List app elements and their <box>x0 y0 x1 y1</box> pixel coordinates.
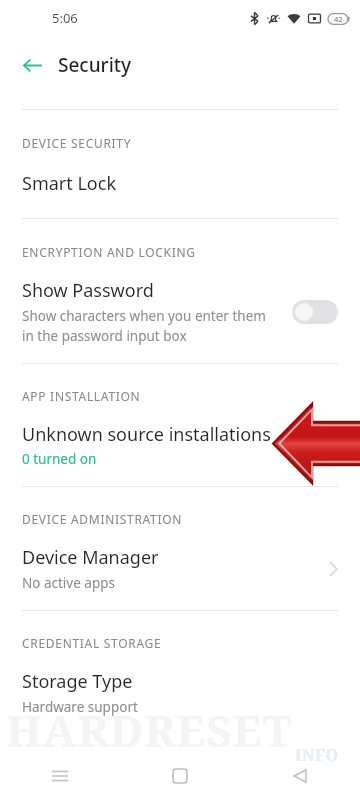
staticText: CREDENTIAL STORAGE <box>22 635 162 651</box>
button[interactable]: Show Password toggle <box>292 300 338 324</box>
staticText: 42 <box>334 14 343 24</box>
button[interactable]: Back <box>12 45 52 85</box>
staticText: 5:06 <box>52 9 78 27</box>
button[interactable]: Show Password <box>0 260 360 363</box>
staticText: Show characters when you enter them in t… <box>22 307 278 345</box>
staticText: Unknown source installations <box>22 422 271 447</box>
button[interactable]: Back <box>240 752 360 800</box>
staticText: Smart Lock <box>22 171 116 196</box>
staticText: Storage Type <box>22 669 133 694</box>
button[interactable]: Recent apps <box>0 752 120 800</box>
staticText: APP INSTALLATION <box>22 388 141 404</box>
button[interactable]: Home <box>120 752 240 800</box>
button[interactable]: Unknown source installations <box>0 404 360 486</box>
button[interactable]: Smart Lock <box>0 151 360 218</box>
staticText: Hardware support <box>22 698 138 716</box>
staticText: Show Password <box>22 278 154 303</box>
staticText: No active apps <box>22 574 115 592</box>
staticText: Device Manager <box>22 545 159 570</box>
staticText: Security <box>58 52 132 78</box>
staticText: DEVICE ADMINISTRATION <box>22 511 183 527</box>
staticText: ENCRYPTION AND LOCKING <box>22 244 196 260</box>
button[interactable]: Device Manager <box>0 527 360 610</box>
staticText: HARDRESET <box>6 700 293 760</box>
staticText: 0 turned on <box>22 450 97 468</box>
staticText: INFO <box>295 744 339 766</box>
staticText: DEVICE SECURITY <box>22 135 132 151</box>
button[interactable]: Storage Type <box>0 651 360 716</box>
